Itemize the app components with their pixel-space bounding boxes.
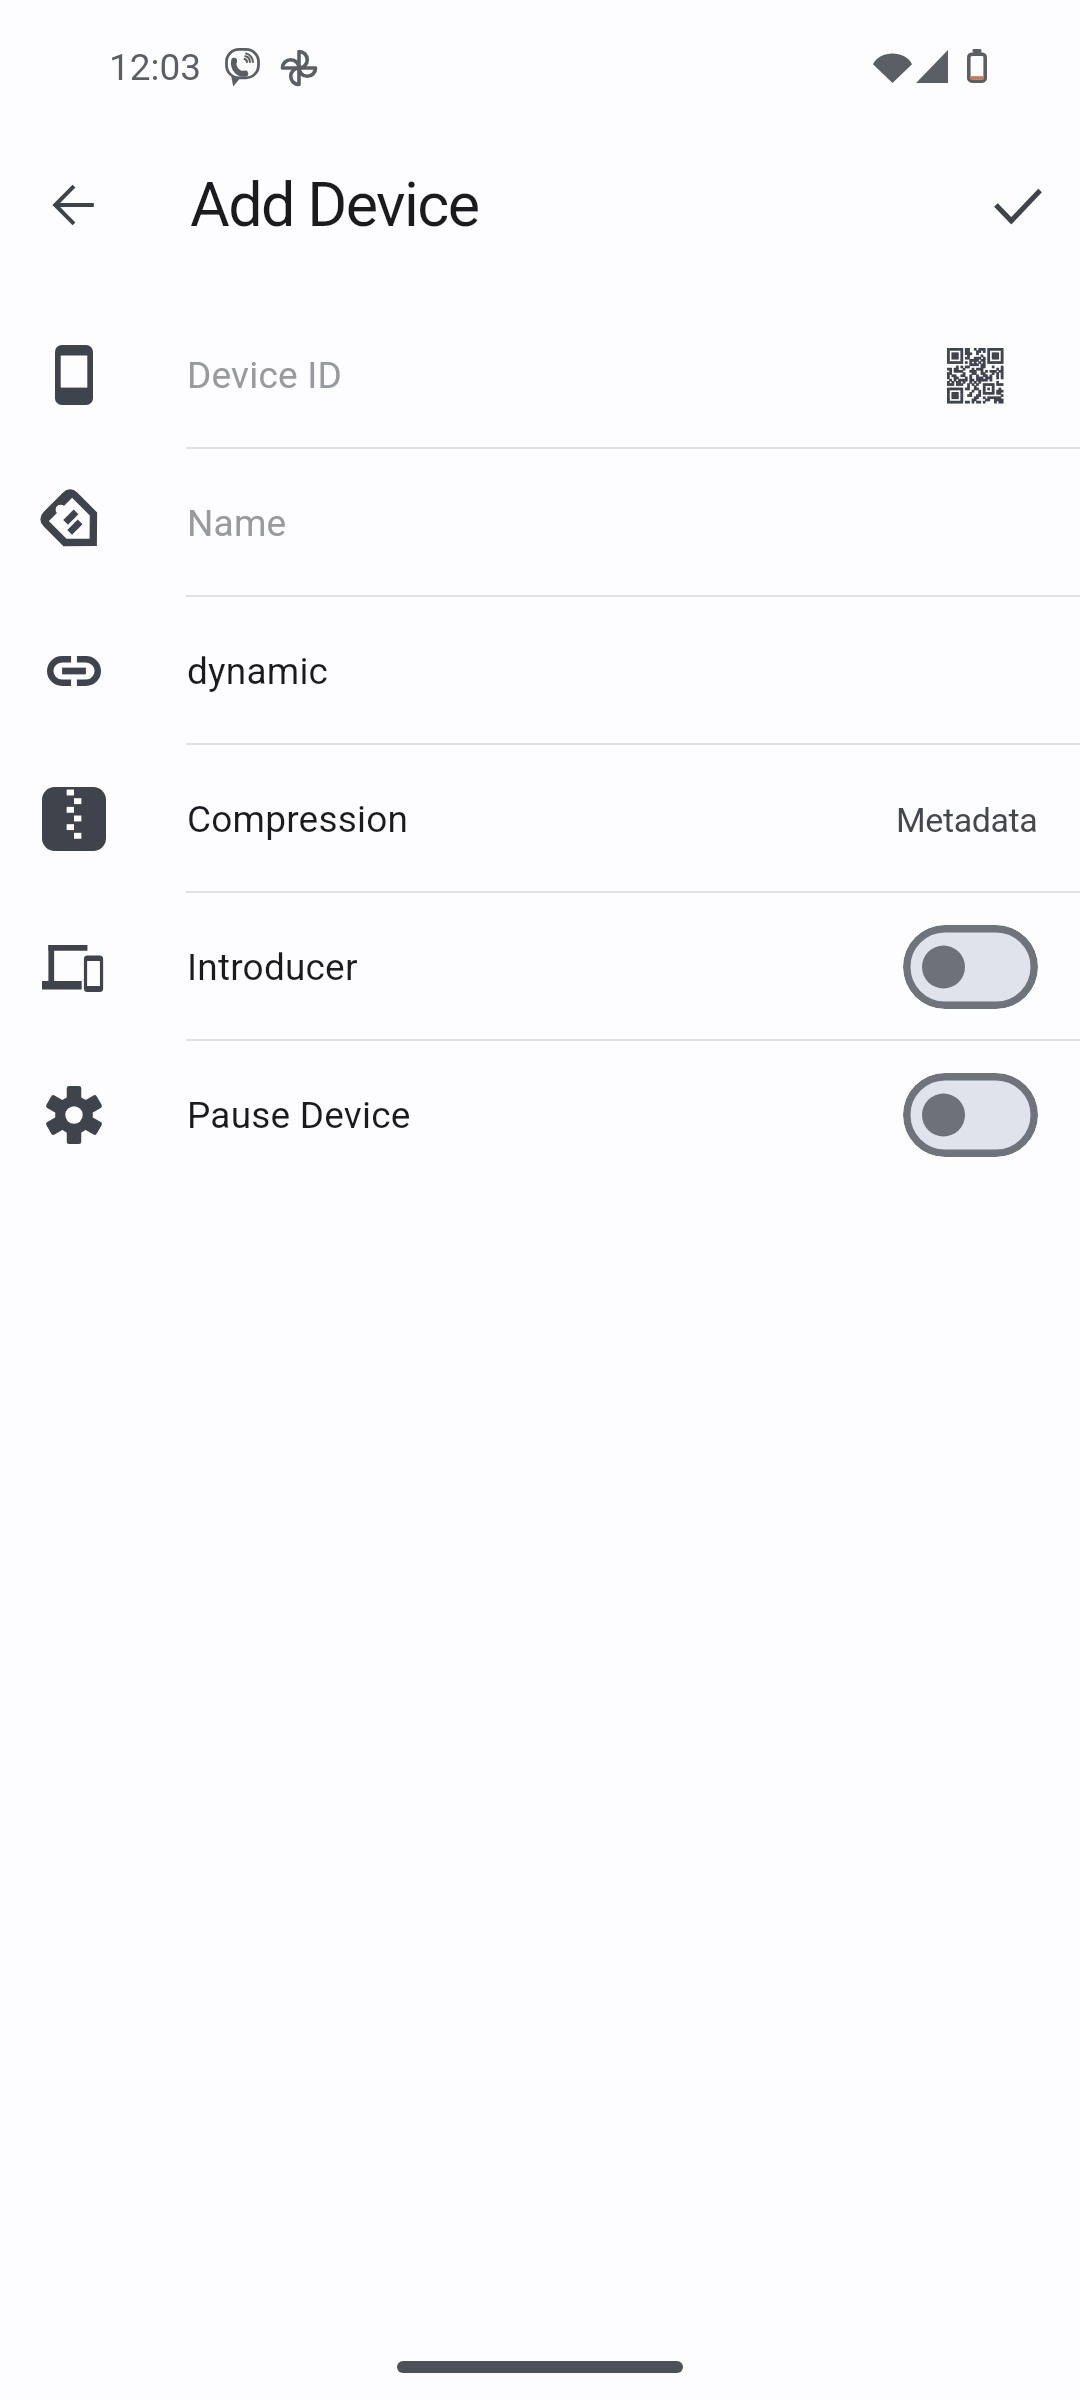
button[interactable]: Scan QR code [929,329,1021,421]
button[interactable]: dynamic [0,597,1080,745]
button[interactable]: Pause Device [0,1041,1080,1189]
staticText: Name [187,502,287,545]
button[interactable]: Back [29,160,119,250]
staticText: 12:03 [109,46,202,89]
staticText: Compression [187,798,409,841]
staticText: Introducer [187,946,358,989]
staticText: Add Device [190,169,479,240]
staticText: Device ID [187,354,342,397]
button[interactable]: Introducer [0,893,1080,1041]
button[interactable]: Confirm [973,160,1063,250]
button[interactable]: Compression [0,745,1080,893]
button[interactable]: Device ID [0,301,1080,449]
staticText: dynamic [187,650,329,693]
button[interactable]: Name [0,449,1080,597]
staticText: Pause Device [187,1094,411,1137]
staticText: Metadata [896,800,1038,840]
button[interactable]: Introducer, off [903,925,1038,1009]
button[interactable]: Pause Device, off [903,1073,1038,1157]
